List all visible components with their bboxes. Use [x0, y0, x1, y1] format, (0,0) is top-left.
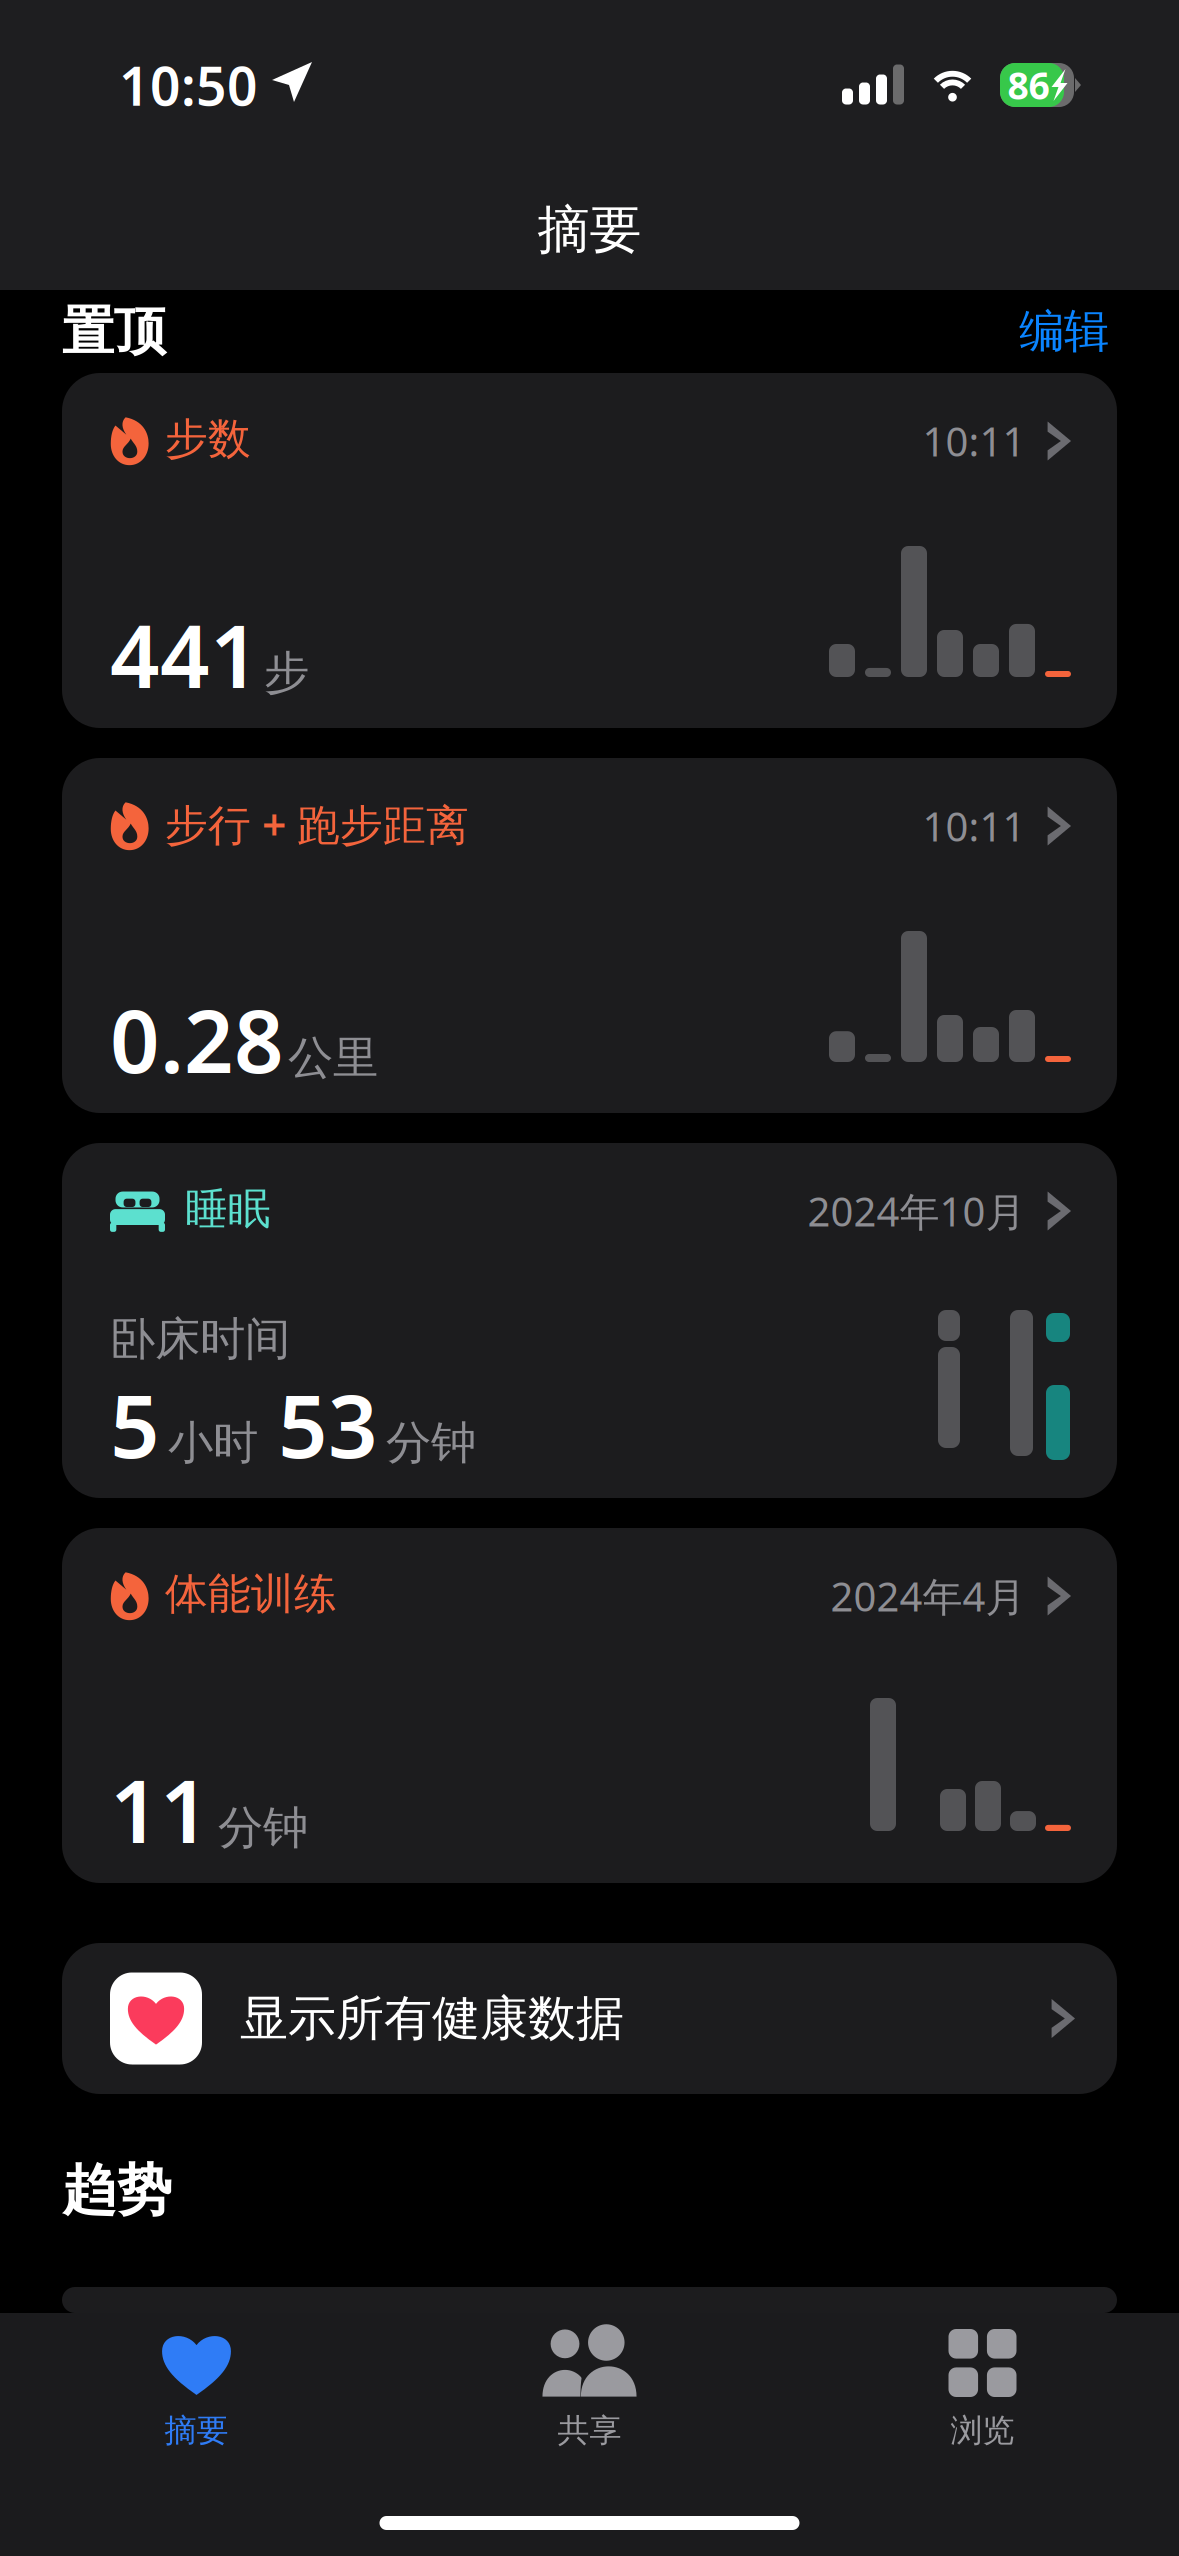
- staticText: 小时: [168, 1415, 258, 1471]
- button[interactable]: Sharing tab: [393, 2329, 786, 2450]
- staticText: 11: [110, 1752, 210, 1867]
- button[interactable]: Browse tab: [786, 2329, 1179, 2450]
- staticText: 分钟: [218, 1800, 308, 1856]
- staticText: 卧床时间: [110, 1311, 290, 1367]
- button[interactable]: 显示所有健康数据: [0, 1943, 1179, 2094]
- button[interactable]: 体能训练: [0, 1528, 1179, 1883]
- staticText: 显示所有健康数据: [240, 1989, 624, 2048]
- button[interactable]: 睡眠: [0, 1143, 1179, 1498]
- staticText: 趋势: [62, 2157, 172, 2224]
- staticText: 2024年4月: [831, 1569, 1026, 1622]
- staticText: 86: [1007, 60, 1049, 110]
- staticText: 0.28: [110, 982, 284, 1097]
- button[interactable]: 步数: [0, 373, 1179, 728]
- staticText: 编辑: [1019, 304, 1109, 359]
- staticText: 分钟: [386, 1415, 476, 1471]
- staticText: 441: [110, 597, 260, 712]
- staticText: 置顶: [62, 300, 166, 363]
- staticText: 摘要: [537, 198, 641, 262]
- staticText: 2024年10月: [808, 1184, 1026, 1237]
- staticText: 10:11: [923, 414, 1026, 467]
- button[interactable]: Summary tab: [0, 2329, 393, 2450]
- staticText: 53: [278, 1367, 378, 1482]
- staticText: 体能训练: [165, 1568, 337, 1620]
- staticText: 10:50: [119, 50, 258, 120]
- staticText: 10:11: [923, 799, 1026, 852]
- staticText: 浏览: [950, 2411, 1014, 2450]
- button[interactable]: 步行 + 跑步距离: [0, 758, 1179, 1113]
- button[interactable]: 编辑: [1019, 304, 1109, 359]
- staticText: 公里: [288, 1030, 378, 1086]
- staticText: 5: [110, 1367, 160, 1482]
- staticText: 步: [264, 645, 309, 701]
- staticText: 睡眠: [185, 1183, 271, 1235]
- staticText: 共享: [557, 2411, 621, 2450]
- staticText: 步行 + 跑步距离: [165, 796, 469, 852]
- staticText: 步数: [165, 413, 251, 465]
- staticText: 摘要: [164, 2411, 228, 2450]
